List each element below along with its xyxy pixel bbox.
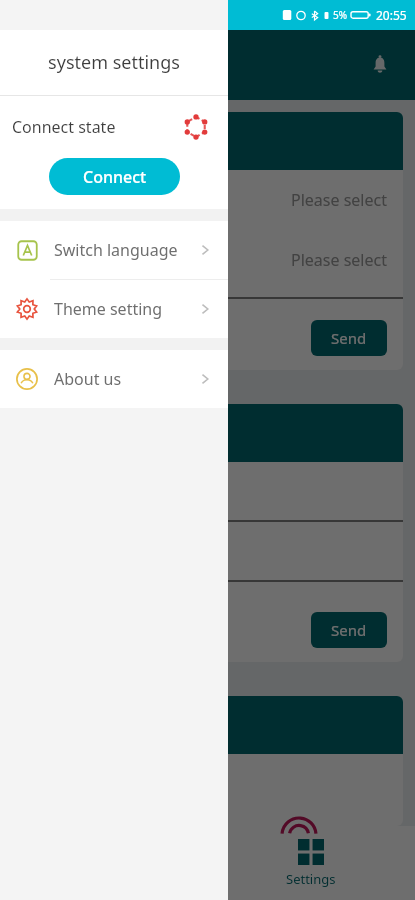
staticText: About us <box>54 368 122 390</box>
staticText: system settings <box>48 50 180 75</box>
staticText: 5% <box>333 8 348 22</box>
staticText: Please select <box>291 189 387 211</box>
button[interactable]: Send <box>311 320 387 356</box>
button[interactable]: Settings <box>207 826 415 900</box>
button[interactable] <box>12 462 403 522</box>
button[interactable]: Notifications <box>363 48 397 82</box>
staticText: Settings <box>286 870 336 888</box>
button[interactable] <box>12 522 403 582</box>
button[interactable]: About us <box>0 350 228 408</box>
button[interactable]: Switch language <box>0 221 228 279</box>
staticText: Send <box>331 620 367 640</box>
button[interactable]: Please select <box>12 170 403 230</box>
staticText: 20:55 <box>376 7 407 23</box>
button[interactable]: Send <box>311 612 387 648</box>
staticText: Theme setting <box>54 298 163 320</box>
staticText: Send <box>331 328 367 348</box>
staticText: Connect <box>83 166 147 188</box>
staticText: Connect state <box>12 116 116 138</box>
staticText: Please select <box>291 249 387 271</box>
button[interactable]: Please select <box>12 230 403 290</box>
button[interactable]: Theme setting <box>0 280 228 338</box>
staticText: Switch language <box>54 239 178 261</box>
staticText: Parameter setting <box>28 128 189 154</box>
button[interactable]: Connect <box>49 158 180 195</box>
